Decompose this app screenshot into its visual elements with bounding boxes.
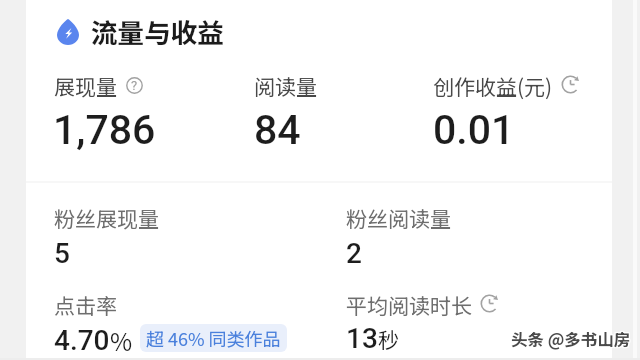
other: 流量 [57,19,79,45]
staticText: 84 [254,106,301,154]
button[interactable]: 展现量 [40,60,226,165]
staticText: 头条 @多书山房 [510,328,630,352]
staticText: % [110,323,133,358]
staticText: 点击率 [54,290,117,320]
staticText: 头条 @多书山房 [512,327,632,351]
button[interactable]: 粉丝阅读量 [332,192,612,274]
staticText: ? [131,78,138,93]
button[interactable]: 平均阅读时长 [332,279,612,360]
staticText: 平均阅读时长 [346,290,472,320]
staticText: 超 46% 同类作品 [146,325,281,351]
staticText: 阅读量 [254,71,317,101]
staticText: 头条 @多书山房 [512,326,632,350]
staticText: 1,786 [53,106,156,154]
staticText: 13 [346,322,378,355]
staticText: 头条 @多书山房 [511,328,631,352]
staticText: 粉丝展现量 [54,203,159,233]
staticText: 头条 @多书山房 [510,326,630,350]
staticText: 流量与收益 [91,12,224,51]
staticText: 0.01 [433,106,515,154]
staticText: 2 [346,237,362,270]
staticText: 头条 @多书山房 [512,328,632,352]
staticText: 头条 @多书山房 [510,327,630,351]
button[interactable]: 创作收益(元) [419,60,594,165]
staticText: 展现量 [54,71,117,101]
button[interactable]: 点击率 [40,279,330,360]
staticText: 头条 @多书山房 [511,327,631,351]
button[interactable]: 流量 [40,11,224,51]
staticText: 创作收益(元) [433,71,553,101]
button[interactable]: 阅读量 [240,60,420,165]
staticText: 头条 @多书山房 [511,326,631,350]
button[interactable]: 超 46% 同类作品 [140,324,287,352]
staticText: 4.70 [54,324,110,357]
button[interactable]: 指标说明 [126,77,143,94]
staticText: 秒 [378,324,399,354]
button[interactable]: 粉丝展现量 [40,192,330,274]
button[interactable]: 数据更新延迟说明 [480,294,499,313]
button[interactable]: 数据更新延迟说明 [561,75,580,94]
staticText: 粉丝阅读量 [346,203,451,233]
staticText: 5 [54,237,70,270]
